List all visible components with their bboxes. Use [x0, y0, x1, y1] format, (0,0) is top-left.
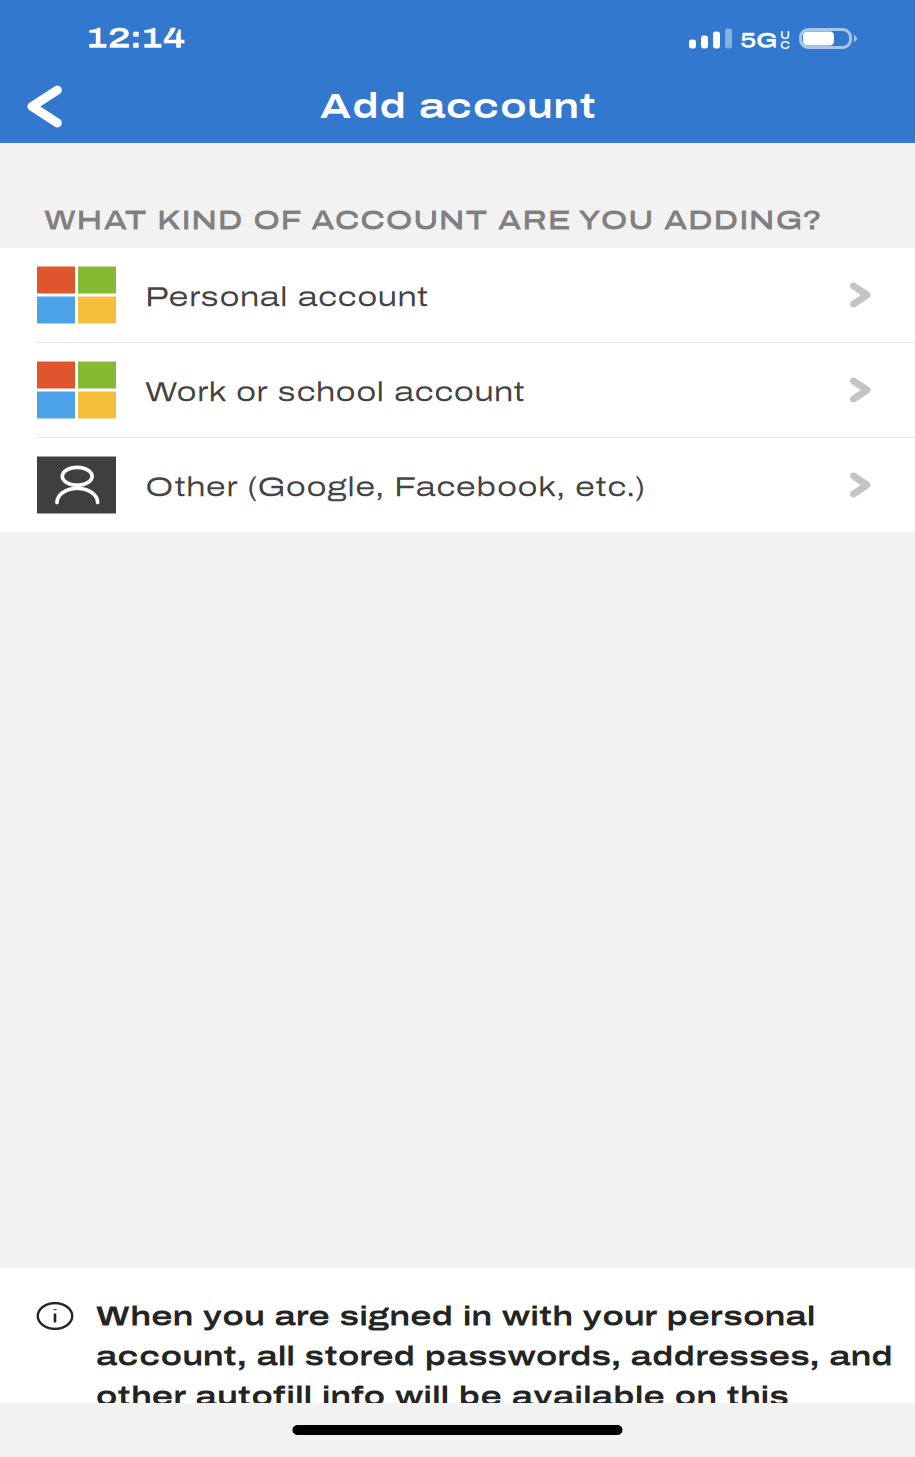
staticText: Personal account — [145, 282, 428, 312]
staticText: U — [780, 30, 790, 41]
staticText: Add account — [319, 88, 595, 125]
staticText: C — [780, 40, 790, 51]
button[interactable]: Personal account — [0, 248, 915, 342]
staticText: 12:14 — [87, 22, 185, 54]
staticText: 5G — [740, 29, 778, 52]
staticText: WHAT KIND OF ACCOUNT ARE YOU ADDING? — [44, 206, 821, 235]
staticText: Other (Google, Facebook, etc.) — [145, 472, 644, 502]
button[interactable]: Back — [0, 70, 85, 143]
staticText: Work or school account — [145, 377, 525, 407]
button[interactable]: Work or school account — [0, 343, 915, 437]
button[interactable]: Other (Google, Facebook, etc.) — [0, 438, 915, 532]
staticText: When you are signed in with your persona… — [96, 1301, 892, 1411]
